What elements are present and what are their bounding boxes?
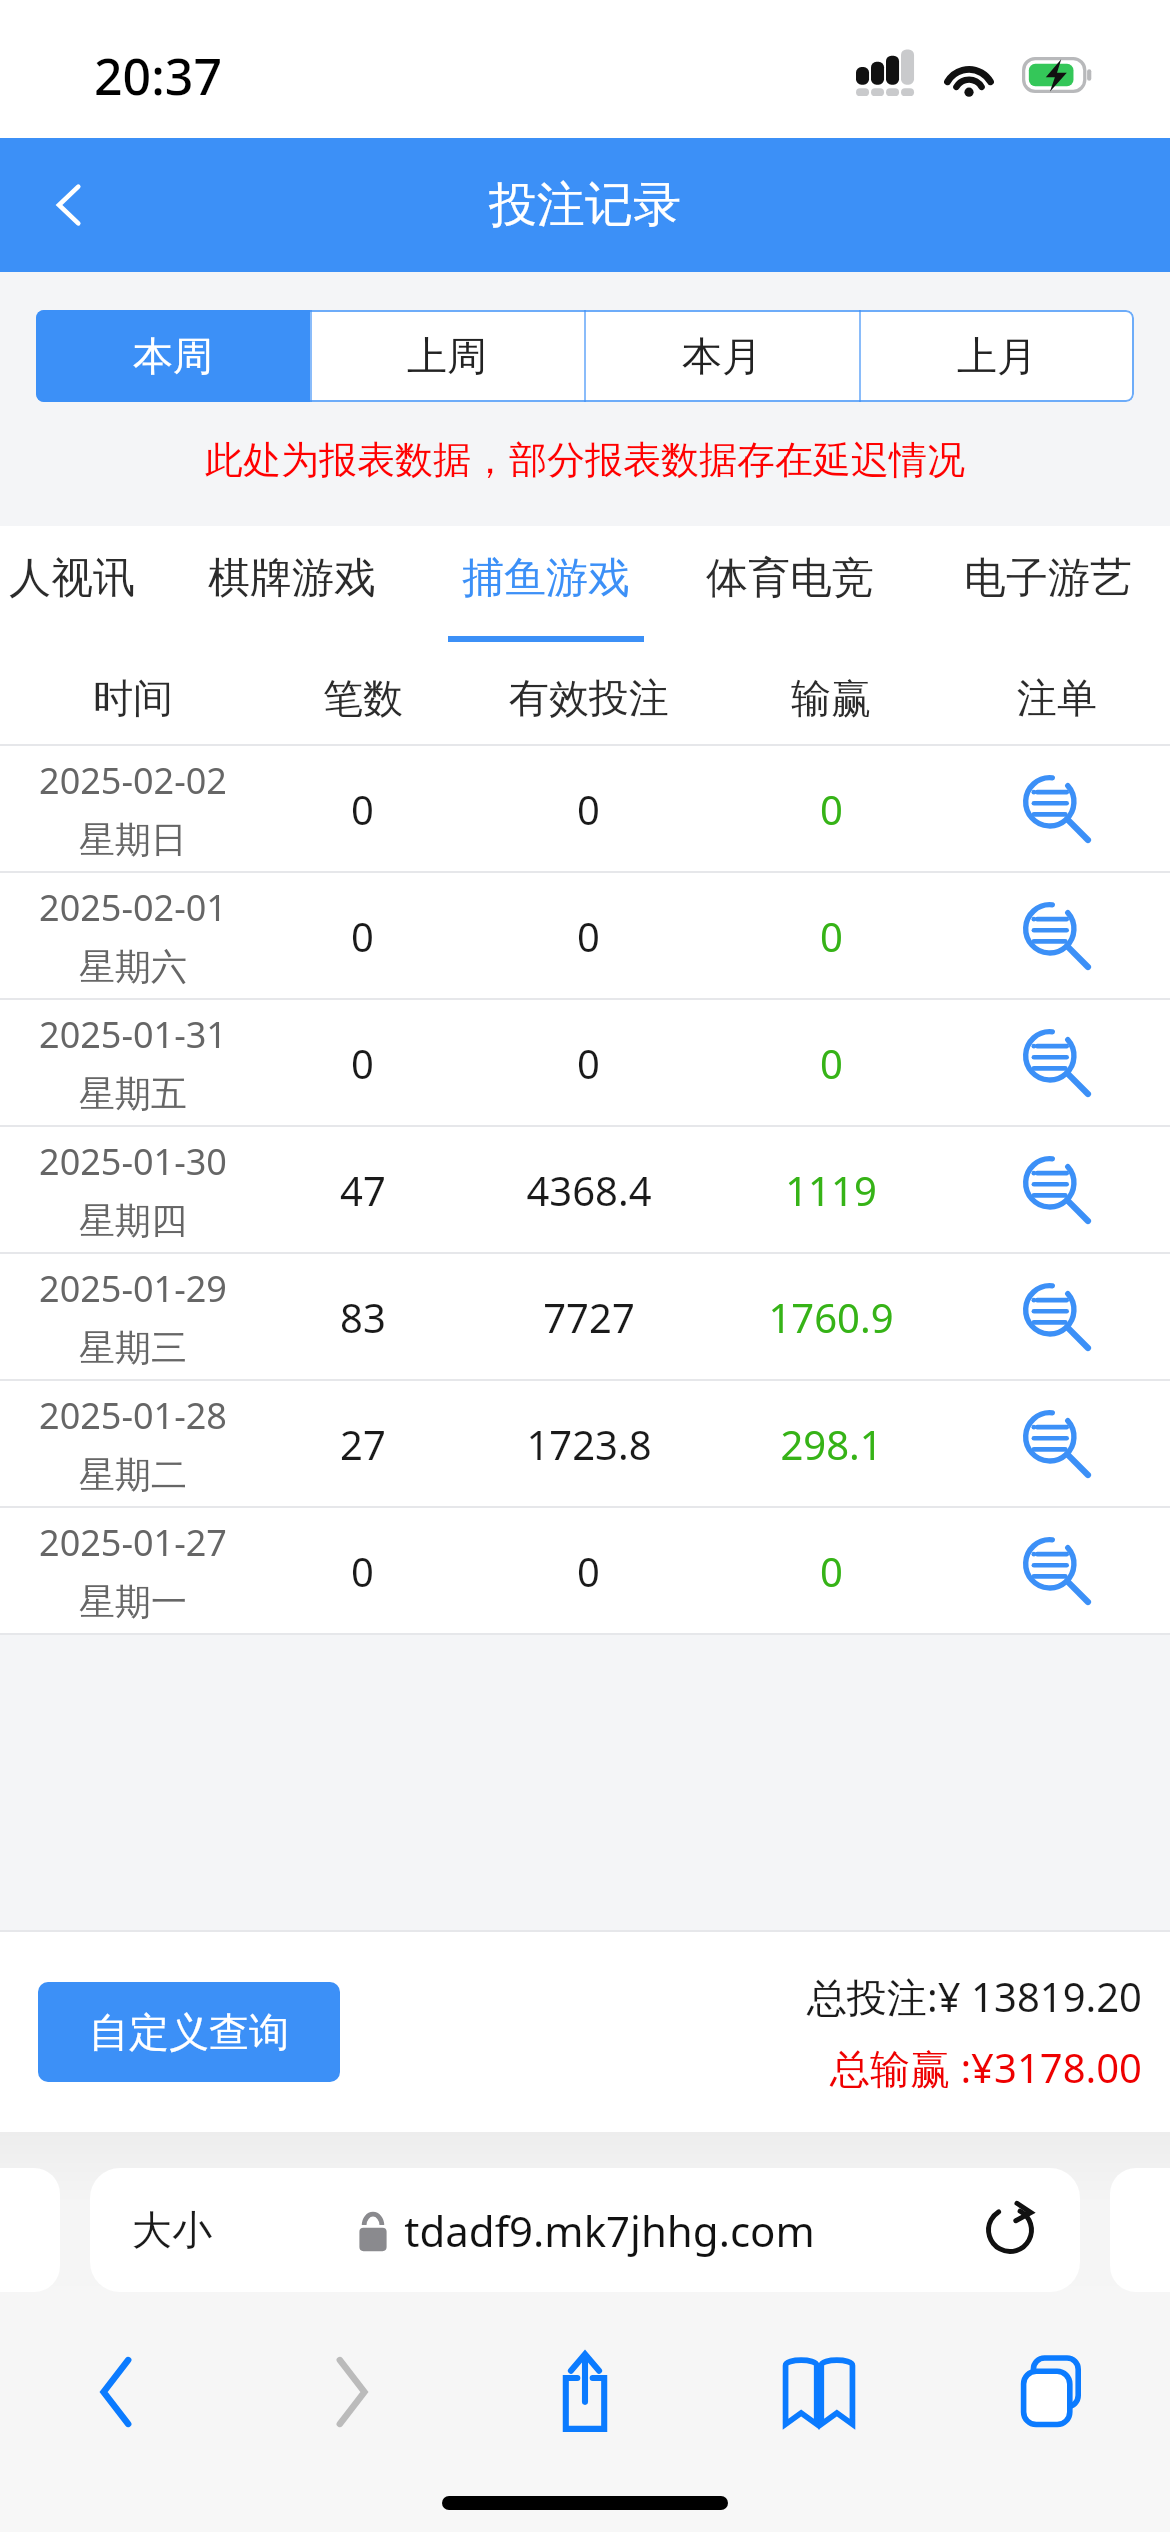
button[interactable]: 2025-01-31 [0, 1000, 1170, 1125]
staticText: 0 [577, 782, 600, 836]
staticText: 1760.9 [768, 1290, 894, 1344]
staticText: 2025-01-30 [39, 1137, 227, 1186]
staticText: 2025-01-27 [39, 1518, 227, 1567]
staticText: 0 [820, 782, 843, 836]
button[interactable]: 查看注单 [1014, 766, 1100, 852]
staticText: 0 [577, 1544, 600, 1598]
button[interactable]: 查看注单 [1014, 1274, 1100, 1360]
button[interactable]: Share [468, 2332, 702, 2452]
staticText: 0 [351, 1036, 374, 1090]
button[interactable]: Forward [234, 2332, 468, 2452]
staticText: 输赢 [791, 673, 871, 723]
staticText: 7727 [543, 1290, 635, 1344]
staticText: 人视讯 [9, 552, 135, 605]
staticText: 星期四 [79, 1198, 187, 1243]
staticText: 298.1 [780, 1417, 883, 1471]
button[interactable]: 体育电竞 [680, 526, 900, 652]
staticText: 1119 [785, 1163, 877, 1217]
staticText: 总投注:¥ 13819.20 [807, 1969, 1142, 2024]
staticText: 星期三 [79, 1325, 187, 1370]
staticText: 27 [340, 1417, 386, 1471]
staticText: 上月 [957, 331, 1037, 381]
button[interactable]: 查看注单 [1014, 1528, 1100, 1614]
button[interactable]: 人视讯 [0, 526, 182, 652]
staticText: 0 [351, 909, 374, 963]
staticText: 电子游艺 [964, 552, 1132, 605]
staticText: 总输赢 :¥3178.00 [830, 2040, 1142, 2095]
staticText: 笔数 [323, 673, 403, 723]
button[interactable]: 2025-01-30 [0, 1127, 1170, 1252]
staticText: 20:37 [94, 42, 222, 110]
button[interactable]: 捕鱼游戏 [436, 526, 656, 652]
button[interactable]: Back [0, 2332, 234, 2452]
button[interactable]: 2025-02-02 [0, 746, 1170, 871]
staticText: 星期六 [79, 944, 187, 989]
staticText: 体育电竞 [706, 552, 874, 605]
button[interactable]: 2025-02-01 [0, 873, 1170, 998]
staticText: tdadf9.mk7jhhg.com [404, 2202, 815, 2259]
button[interactable]: 查看注单 [1014, 893, 1100, 979]
button[interactable]: Bookmarks [702, 2332, 936, 2452]
staticText: 2025-01-29 [39, 1264, 227, 1313]
staticText: 上周 [407, 331, 487, 381]
staticText: 47 [340, 1163, 386, 1217]
staticText: 星期日 [79, 817, 187, 862]
staticText: 注单 [1017, 673, 1097, 723]
staticText: 0 [577, 1036, 600, 1090]
button[interactable]: 查看注单 [1014, 1401, 1100, 1487]
staticText: 2025-02-02 [39, 756, 227, 805]
staticText: 2025-01-31 [39, 1010, 227, 1059]
button[interactable]: 自定义查询 [38, 1982, 340, 2082]
staticText: 棋牌游戏 [208, 552, 376, 605]
staticText: 自定义查询 [89, 2007, 289, 2057]
staticText: 2025-01-28 [39, 1391, 227, 1440]
staticText: 星期一 [79, 1579, 187, 1624]
button[interactable]: Back [22, 157, 118, 253]
staticText: 捕鱼游戏 [462, 552, 630, 605]
staticText: 1723.8 [526, 1417, 652, 1471]
button[interactable]: 2025-01-29 [0, 1254, 1170, 1379]
staticText: 0 [577, 909, 600, 963]
staticText: 0 [820, 909, 843, 963]
button[interactable]: 上月 [859, 310, 1134, 402]
button[interactable]: 棋牌游戏 [182, 526, 402, 652]
button[interactable]: 查看注单 [1014, 1020, 1100, 1106]
button[interactable]: Reload [974, 2194, 1046, 2266]
staticText: 投注记录 [489, 175, 681, 235]
staticText: 4368.4 [526, 1163, 652, 1217]
button[interactable]: Tabs [936, 2332, 1170, 2452]
staticText: 本月 [682, 331, 762, 381]
button[interactable]: 电子游艺 [938, 526, 1158, 652]
staticText: 时间 [93, 673, 173, 723]
button[interactable]: 2025-01-27 [0, 1508, 1170, 1633]
button[interactable]: 本周 [36, 310, 310, 402]
staticText: 本周 [133, 331, 213, 381]
staticText: 0 [820, 1544, 843, 1598]
button[interactable]: 本月 [584, 310, 859, 402]
staticText: 星期二 [79, 1452, 187, 1497]
staticText: 2025-02-01 [39, 883, 227, 932]
button[interactable]: 2025-01-28 [0, 1381, 1170, 1506]
staticText: 大小 [132, 2205, 212, 2255]
staticText: 星期五 [79, 1071, 187, 1116]
staticText: 此处为报表数据，部分报表数据存在延迟情况 [0, 436, 1170, 484]
staticText: 0 [351, 782, 374, 836]
button[interactable]: 查看注单 [1014, 1147, 1100, 1233]
staticText: 83 [340, 1290, 386, 1344]
button[interactable]: 上周 [310, 310, 584, 402]
button[interactable]: 大小 [90, 2168, 1080, 2292]
staticText: 0 [820, 1036, 843, 1090]
staticText: 有效投注 [509, 673, 669, 723]
staticText: 0 [351, 1544, 374, 1598]
